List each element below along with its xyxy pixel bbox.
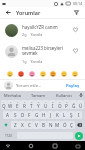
button[interactable]: V — [33, 121, 40, 129]
staticText: X — [21, 122, 24, 128]
staticText: J — [50, 112, 52, 118]
staticText: Ö — [63, 122, 67, 128]
button[interactable]: L — [61, 111, 68, 119]
button[interactable]: A — [3, 111, 11, 119]
button[interactable]: Recents — [50, 141, 59, 150]
button[interactable]: F — [26, 111, 33, 119]
button[interactable]: X — [19, 121, 26, 129]
button[interactable]: K — [54, 111, 61, 119]
button[interactable]: Back — [4, 8, 13, 17]
staticText: ?123 — [5, 134, 12, 138]
button[interactable]: Keyboard down — [4, 142, 12, 150]
button[interactable]: C — [26, 121, 33, 129]
staticText: 00:14 — [73, 1, 83, 6]
button[interactable]: 4 — [21, 100, 28, 109]
button[interactable]: S — [11, 111, 19, 119]
staticText: Z — [14, 122, 17, 128]
button[interactable]: Emoji 3 — [39, 70, 47, 78]
button[interactable]: I — [75, 111, 82, 119]
button[interactable]: Emoji 6 — [71, 70, 79, 78]
button[interactable]: Keyboard switcher — [74, 142, 82, 150]
staticText: K — [56, 112, 59, 118]
staticText: Y — [37, 103, 40, 109]
staticText: P — [65, 103, 68, 109]
button[interactable]: Merhaba — [0, 91, 25, 99]
button[interactable]: Shift — [1, 121, 11, 129]
button[interactable]: Emoji 1 — [17, 70, 25, 78]
staticText: L — [63, 112, 66, 118]
button[interactable]: Emoji 5 — [60, 70, 68, 78]
staticText: G — [35, 112, 39, 118]
button[interactable]: Backspace — [75, 121, 84, 129]
button[interactable]: Z — [11, 121, 19, 129]
button[interactable]: hayallcYZR canım — [0, 21, 85, 40]
staticText: S — [14, 112, 17, 118]
staticText: Ğ — [72, 103, 76, 109]
button[interactable]: Ö — [61, 121, 68, 129]
staticText: Ş — [70, 112, 73, 118]
button[interactable]: H — [40, 111, 47, 119]
button[interactable]: Tamam — [25, 91, 51, 99]
button[interactable]: melisa223 birseyleri sevmek hayatımızdan… — [0, 42, 85, 67]
staticText: Paylaş — [66, 83, 80, 89]
staticText: 8 — [52, 100, 54, 103]
button[interactable]: 8 — [49, 100, 56, 109]
button[interactable]: Kullanıcı — [51, 91, 77, 99]
staticText: Tamam — [31, 93, 45, 98]
staticText: F — [28, 112, 31, 118]
staticText: Ç — [70, 122, 73, 128]
button[interactable]: Like — [70, 45, 80, 55]
button[interactable]: ?123 — [1, 131, 16, 140]
button[interactable]: Ğ — [70, 100, 77, 109]
button[interactable]: 5 — [28, 100, 35, 109]
staticText: V — [35, 122, 38, 128]
button[interactable]: Like — [70, 24, 80, 34]
button[interactable]: 3 — [14, 100, 21, 109]
staticText: D — [21, 112, 25, 118]
button[interactable]: Voice input — [77, 91, 85, 99]
button[interactable]: Emoji 0 — [6, 70, 14, 78]
button[interactable]: G — [33, 111, 40, 119]
button[interactable]: Home — [26, 141, 35, 150]
staticText: 5 — [31, 100, 33, 103]
button[interactable]: N — [47, 121, 54, 129]
button[interactable]: 0 — [63, 100, 70, 109]
button[interactable]: Paylaş — [65, 81, 81, 91]
staticText: M — [55, 122, 60, 128]
button[interactable]: 2 — [7, 100, 14, 109]
button[interactable]: 6 — [35, 100, 42, 109]
staticText: T — [30, 103, 33, 109]
staticText: Ü — [79, 103, 83, 109]
button[interactable]: 1 — [1, 100, 7, 109]
staticText: 3 — [17, 100, 19, 103]
staticText: 0 — [66, 100, 68, 103]
staticText: B — [42, 122, 45, 128]
button[interactable]: B — [40, 121, 47, 129]
button[interactable]: Yorum ekle... — [16, 83, 65, 89]
staticText: I — [78, 112, 80, 118]
button[interactable]: 7 — [42, 100, 49, 109]
staticText: 1g Yanıtla — [22, 59, 43, 64]
button[interactable]: D — [19, 111, 26, 119]
staticText: A — [6, 112, 9, 118]
staticText: 4 — [24, 100, 26, 103]
button[interactable]: Ç — [68, 121, 75, 129]
button[interactable]: M — [54, 121, 61, 129]
button[interactable]: Ş — [68, 111, 75, 119]
staticText: Yorumlar — [16, 9, 41, 16]
button[interactable]: Ü — [77, 100, 84, 109]
staticText: Merhaba — [4, 93, 21, 98]
staticText: melisa223 birseyleri sevmek hayatımızdan… — [22, 45, 67, 57]
staticText: E — [16, 103, 19, 109]
button[interactable]: Emoji 2 — [28, 70, 36, 78]
staticText: 2g Yanıtla — [22, 32, 43, 37]
button[interactable]: Send — [75, 132, 83, 140]
staticText: 6 — [38, 100, 40, 103]
button[interactable]: Filter — [72, 8, 81, 17]
button[interactable]: 9 — [56, 100, 63, 109]
button[interactable]: J — [47, 111, 54, 119]
staticText: W — [8, 103, 13, 109]
button[interactable]: Emoji 4 — [49, 70, 57, 78]
staticText: 1 — [3, 100, 5, 103]
